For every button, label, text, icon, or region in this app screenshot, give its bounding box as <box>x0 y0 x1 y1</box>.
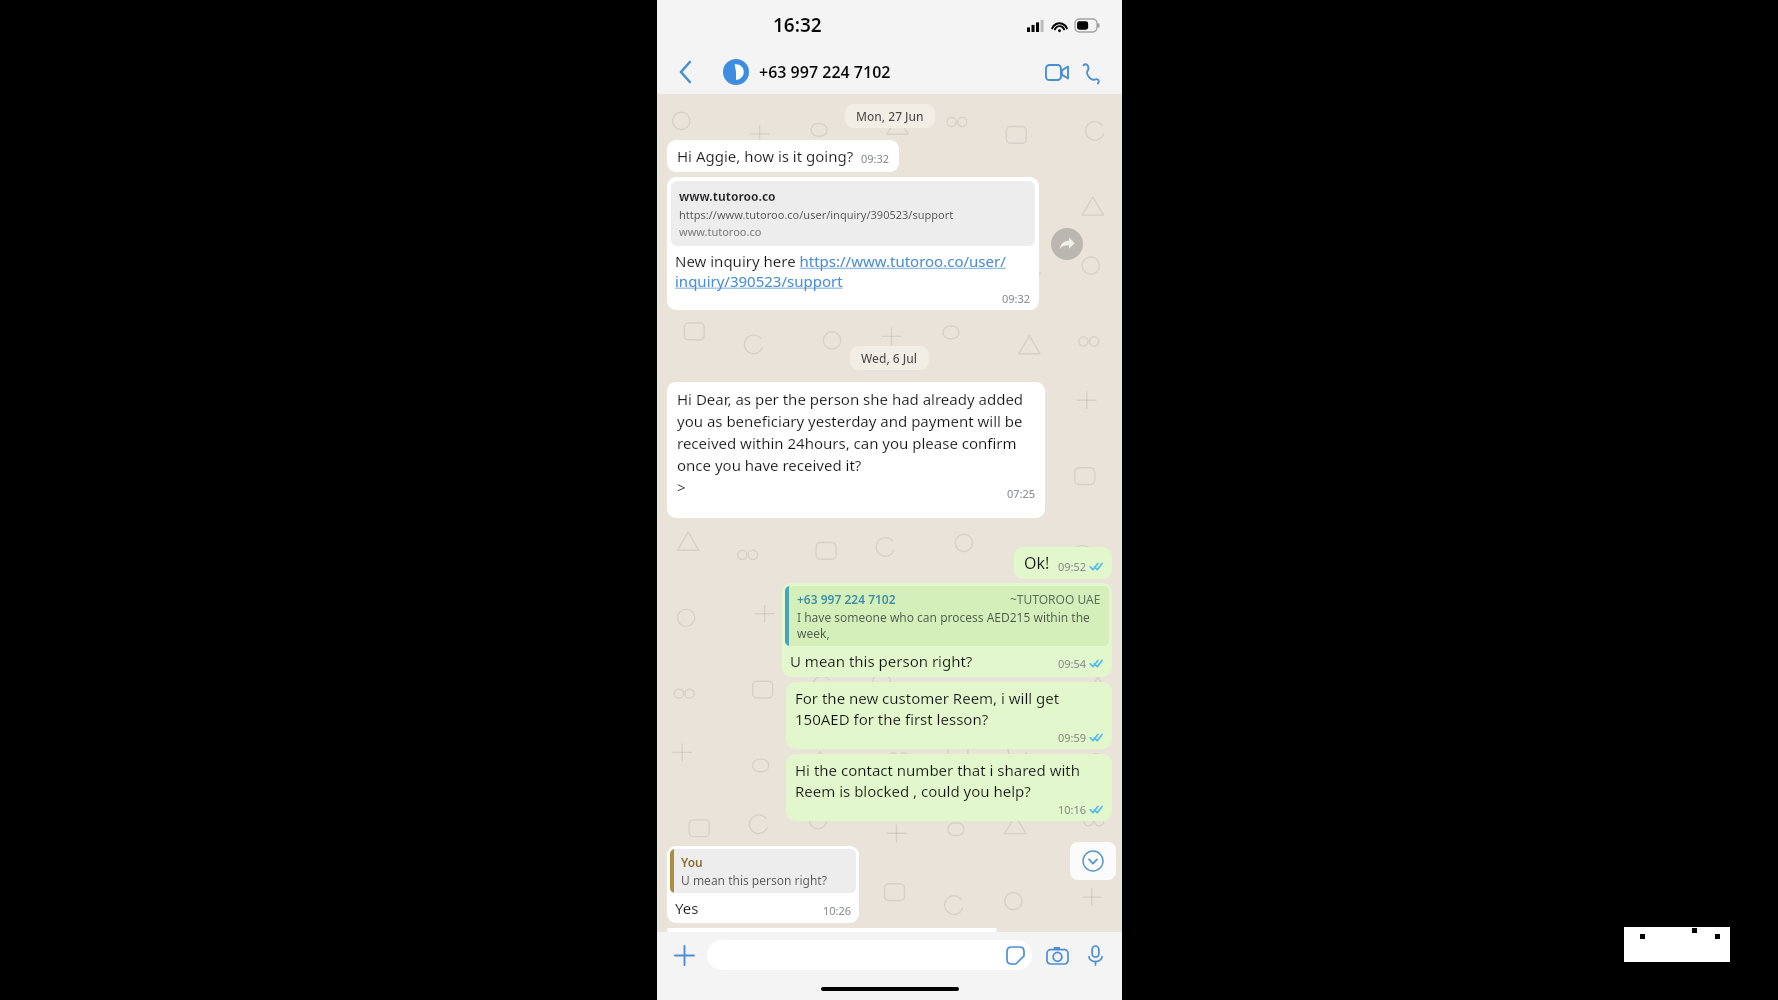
staticText: Yes <box>675 898 699 918</box>
button[interactable]: Attach <box>669 940 699 970</box>
button[interactable]: +63 997 224 7102 <box>723 59 1040 85</box>
button[interactable]: You <box>667 846 859 923</box>
button[interactable]: Back <box>671 57 701 87</box>
button[interactable]: Hi Aggie, how is it going? <box>667 140 899 172</box>
staticText: U mean this person right? <box>790 651 973 671</box>
button[interactable]: For the new customer Reem, i will get 15… <box>786 682 1112 749</box>
staticText: 09:32 <box>1002 291 1031 306</box>
staticText: New inquiry here https://www.tutoroo.co/… <box>675 251 1031 291</box>
button[interactable]: Hi Dear, as per the person she had alrea… <box>667 382 1045 518</box>
button[interactable]: Camera <box>1042 940 1072 970</box>
staticText: +63 997 224 7102 <box>797 591 896 607</box>
button[interactable]: Forward <box>1051 228 1083 260</box>
staticText: Hi Aggie, how is it going? <box>677 146 854 166</box>
staticText: 09:54 <box>1058 656 1087 671</box>
button[interactable]: Voice message <box>1080 940 1110 970</box>
button[interactable]: Ok! <box>1014 547 1112 579</box>
staticText: 16:32 <box>773 12 822 38</box>
button[interactable]: Hi the contact number that i shared with… <box>786 754 1112 821</box>
button[interactable]: Voice call <box>1074 55 1108 89</box>
staticText: Ok! <box>1024 552 1050 574</box>
staticText: Hi Dear, as per the person she had alrea… <box>677 389 1036 498</box>
staticText: Hi the contact number that i shared with… <box>795 760 1104 802</box>
staticText: You <box>681 854 703 870</box>
staticText: 07:25 <box>1007 486 1036 501</box>
staticText: https://www.tutoroo.co/user/inquiry/3905… <box>679 207 954 222</box>
staticText: I have someone who can process AED215 wi… <box>797 609 1101 641</box>
staticText: +63 997 224 7102 <box>759 61 891 83</box>
staticText: www.tutoroo.co <box>679 224 762 239</box>
staticText: 09:32 <box>861 151 890 166</box>
staticText: Mon, 27 Jun <box>856 108 924 124</box>
staticText: 10:16 <box>1058 802 1087 817</box>
button[interactable]: www.tutoroo.co <box>667 177 1039 310</box>
staticText: 09:59 <box>1058 730 1087 745</box>
button[interactable]: Video call <box>1040 55 1074 89</box>
staticText: Wed, 6 Jul <box>861 350 918 366</box>
button[interactable] <box>707 940 1032 970</box>
button[interactable]: +63 997 224 7102 <box>782 583 1112 677</box>
staticText: U mean this person right? <box>681 872 827 888</box>
staticText: 09:52 <box>1058 559 1087 574</box>
staticText: 10:26 <box>823 903 852 918</box>
staticText: www.tutoroo.co <box>679 188 776 204</box>
staticText: For the new customer Reem, i will get 15… <box>795 688 1104 730</box>
staticText: ~TUTOROO UAE <box>1010 591 1101 607</box>
button[interactable]: Scroll to bottom <box>1070 842 1116 880</box>
